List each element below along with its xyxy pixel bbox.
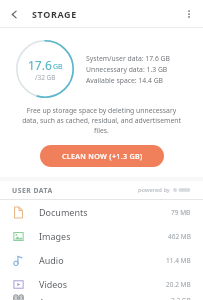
staticText: Videos	[39, 278, 68, 290]
button[interactable]: Audio	[0, 248, 203, 272]
button[interactable]: CLEAN NOW (+1.3 GB)	[40, 145, 164, 167]
button[interactable]: Back	[0, 0, 28, 28]
staticText: Apps	[39, 296, 61, 300]
staticText: 11.4 MB	[166, 256, 191, 265]
staticText: powered by	[138, 186, 170, 194]
staticText: System/user data: 17.6 GB	[86, 54, 170, 63]
button[interactable]: Images	[0, 224, 203, 248]
staticText: Unnecessary data: 1.3 GB	[86, 65, 168, 74]
button[interactable]: Apps	[0, 296, 203, 300]
staticText: USER DATA	[12, 186, 53, 195]
staticText: Available space: 14.4 GB	[86, 76, 164, 85]
staticText: GB	[53, 62, 63, 72]
staticText: 79 MB	[171, 208, 191, 217]
staticText: 20.2 MB	[166, 280, 191, 289]
button[interactable]: Documents	[0, 200, 203, 224]
button[interactable]: More options	[175, 0, 203, 28]
staticText: Documents	[39, 206, 88, 218]
staticText: STORAGE	[32, 8, 77, 20]
staticText: /32 GB	[35, 73, 56, 82]
staticText: Free up storage space by deleting unnece…	[18, 106, 185, 135]
staticText: 17.6	[28, 57, 52, 73]
button[interactable]: Videos	[0, 272, 203, 296]
staticText: 2.2 GB	[171, 296, 191, 300]
staticText: 462 MB	[168, 232, 191, 241]
staticText: CLEAN NOW (+1.3 GB)	[62, 151, 143, 161]
staticText: Images	[39, 230, 71, 242]
staticText: Audio	[39, 254, 64, 266]
